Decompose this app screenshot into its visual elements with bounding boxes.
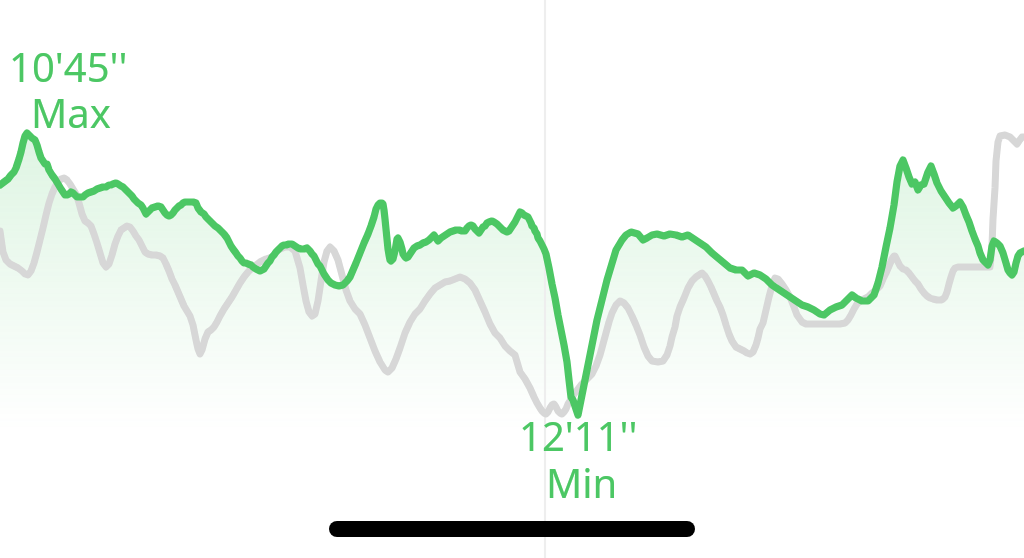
button[interactable]: Pace chart — [0, 0, 1024, 558]
